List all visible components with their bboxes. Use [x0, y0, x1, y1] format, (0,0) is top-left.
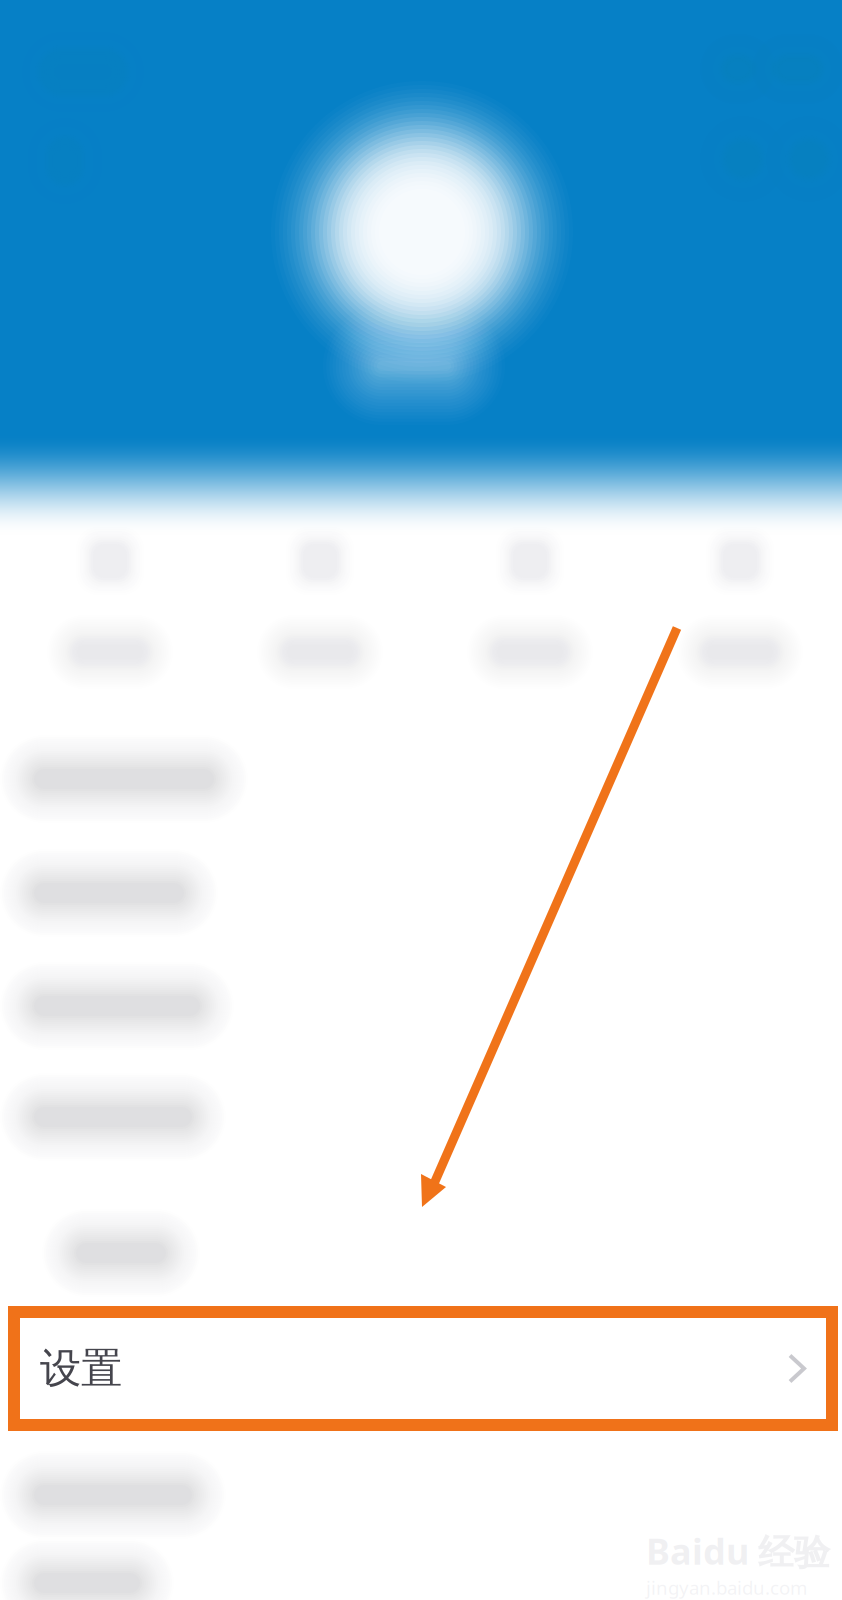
staticText: 设置: [40, 1343, 122, 1394]
button[interactable]: 快捷入口: [640, 496, 840, 664]
button[interactable]: 快捷入口: [10, 496, 210, 664]
button[interactable]: 列表项: [0, 948, 842, 1063]
button[interactable]: 列表项: [0, 1525, 842, 1600]
button[interactable]: 列表项: [0, 721, 842, 836]
button[interactable]: 列表项: [0, 835, 842, 950]
staticText: jingyan.baidu.com: [646, 1575, 807, 1600]
button[interactable]: 快捷入口: [220, 496, 420, 664]
button[interactable]: 列表项: [0, 1195, 842, 1310]
staticText: Baidu 经验: [646, 1527, 830, 1575]
button[interactable]: 列表项: [0, 1437, 842, 1552]
button[interactable]: 设置: [14, 1312, 832, 1425]
button[interactable]: 列表项: [0, 1059, 842, 1174]
button[interactable]: 快捷入口: [430, 496, 630, 664]
